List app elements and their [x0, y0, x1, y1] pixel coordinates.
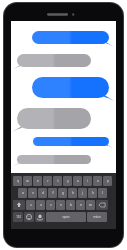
staticText: f — [52, 191, 54, 195]
staticText: o — [97, 179, 99, 183]
staticText: c — [50, 203, 52, 207]
button[interactable]: o — [93, 176, 102, 186]
button[interactable]: Backspace — [96, 200, 108, 210]
button[interactable]: c — [46, 200, 55, 210]
staticText: h — [72, 191, 74, 195]
staticText: l — [102, 191, 103, 195]
staticText: r — [47, 179, 49, 183]
staticText: x — [40, 203, 42, 207]
button[interactable]: w — [23, 176, 32, 186]
button[interactable]: k — [88, 188, 97, 198]
staticText: d — [42, 191, 44, 195]
button[interactable]: j — [78, 188, 87, 198]
button[interactable]: s — [28, 188, 37, 198]
button[interactable]: m — [86, 200, 95, 210]
staticText: return — [93, 215, 101, 219]
button[interactable]: Shift — [13, 200, 25, 210]
button[interactable]: u — [73, 176, 82, 186]
staticText: b — [70, 203, 72, 207]
button[interactable]: Received message — [12, 108, 91, 133]
staticText: u — [77, 179, 79, 183]
button[interactable]: l — [98, 188, 107, 198]
button[interactable]: d — [38, 188, 47, 198]
button[interactable]: t — [53, 176, 62, 186]
button[interactable]: Emoji — [24, 212, 34, 222]
button[interactable]: f — [48, 188, 57, 198]
staticText: z — [30, 203, 32, 207]
button[interactable]: n — [76, 200, 85, 210]
button[interactable]: Received message — [12, 155, 91, 168]
button[interactable]: Voice input — [35, 212, 45, 222]
staticText: y — [67, 179, 69, 183]
button[interactable]: z — [26, 200, 35, 210]
button[interactable]: p — [103, 176, 112, 186]
staticText: space — [62, 215, 70, 219]
button[interactable]: return — [87, 212, 107, 222]
button[interactable]: q — [13, 176, 22, 186]
button[interactable]: v — [56, 200, 65, 210]
staticText: m — [89, 203, 92, 207]
staticText: w — [26, 179, 29, 183]
staticText: g — [62, 191, 64, 195]
button[interactable]: Received message — [12, 54, 91, 71]
staticText: i — [87, 179, 88, 183]
button[interactable]: e — [33, 176, 42, 186]
button[interactable]: y — [63, 176, 72, 186]
button[interactable]: b — [66, 200, 75, 210]
staticText: q — [17, 179, 19, 183]
button[interactable]: Sent message — [32, 31, 114, 48]
staticText: t — [57, 179, 59, 183]
staticText: 123 — [16, 215, 21, 219]
staticText: s — [32, 191, 34, 195]
button[interactable]: r — [43, 176, 52, 186]
staticText: a — [22, 191, 24, 195]
button[interactable]: Sent message — [33, 137, 114, 150]
staticText: n — [80, 203, 82, 207]
button[interactable]: space — [46, 212, 86, 222]
button[interactable]: 123 — [13, 212, 23, 222]
staticText: v — [60, 203, 62, 207]
button[interactable]: x — [36, 200, 45, 210]
button[interactable]: Sent message — [32, 77, 114, 102]
button[interactable]: g — [58, 188, 67, 198]
button[interactable]: a — [18, 188, 27, 198]
staticText: k — [92, 191, 94, 195]
button[interactable]: h — [68, 188, 77, 198]
staticText: j — [82, 191, 83, 195]
staticText: e — [37, 179, 39, 183]
staticText: p — [107, 179, 109, 183]
button[interactable]: i — [83, 176, 92, 186]
